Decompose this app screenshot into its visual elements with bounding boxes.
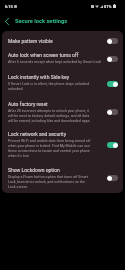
- staticText: After 5 seconds except when kept unlocke…: [8, 60, 102, 64]
- staticText: Auto factory reset: [8, 101, 48, 107]
- button[interactable]: On: [107, 81, 118, 87]
- staticText: Lock instantly with Side key: [8, 74, 70, 80]
- button[interactable]: Navigate up: [0, 12, 13, 30]
- button[interactable]: Lock instantly with Side key: [2, 70, 123, 97]
- button[interactable]: On: [107, 142, 118, 148]
- button[interactable]: Auto lock when screen turns off: [2, 48, 123, 70]
- button[interactable]: Make pattern visible: [2, 34, 123, 48]
- staticText: 81%: [104, 4, 112, 9]
- staticText: Auto lock when screen turns off: [8, 52, 79, 58]
- staticText: 6:15: [5, 4, 13, 9]
- staticText: After 20 incorrect attempts to unlock yo…: [8, 109, 91, 123]
- staticText: Show Lockdown option: [8, 167, 60, 173]
- staticText: Lock network and security: [8, 131, 67, 137]
- staticText: Display a Power button option that turns…: [8, 175, 89, 189]
- staticText: Make pattern visible: [8, 38, 53, 44]
- button[interactable]: Show Lockdown option: [2, 163, 123, 193]
- button[interactable]: Lock network and security: [2, 127, 123, 163]
- button[interactable]: Off: [107, 175, 118, 181]
- button[interactable]: Off: [107, 56, 118, 62]
- button[interactable]: Auto factory reset: [2, 97, 123, 127]
- staticText: Secure lock settings: [15, 18, 68, 25]
- staticText: Prevent Wi-Fi and mobile data from being…: [8, 139, 91, 158]
- staticText: If Smart Lock is in effect, the phone st…: [8, 82, 90, 91]
- button[interactable]: Off: [107, 109, 118, 115]
- button[interactable]: Off: [107, 38, 118, 44]
